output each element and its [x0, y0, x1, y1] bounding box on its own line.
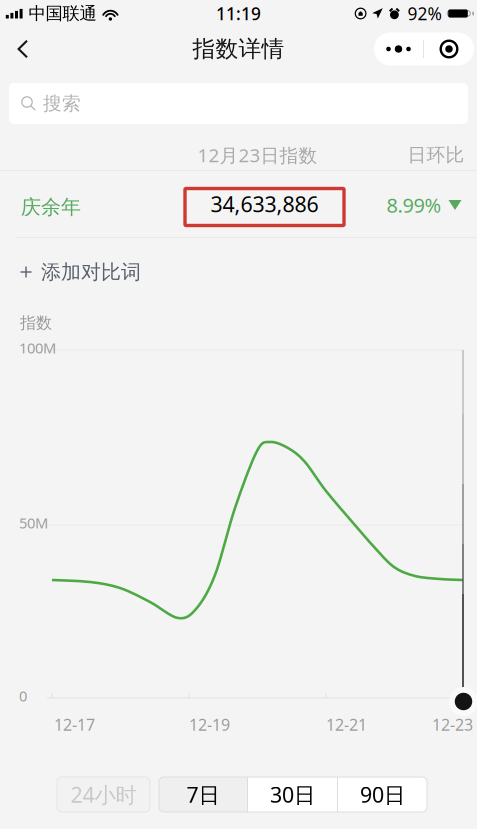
- staticText: 90日: [360, 780, 405, 809]
- button[interactable]: 24小时: [57, 777, 150, 812]
- button[interactable]: More options: [374, 32, 423, 65]
- staticText: 100M: [19, 338, 56, 357]
- button[interactable]: 庆余年: [0, 170, 477, 238]
- button[interactable]: Back: [0, 27, 46, 71]
- button[interactable]: 30日: [248, 777, 337, 812]
- staticText: 50M: [19, 513, 48, 532]
- staticText: 庆余年: [21, 195, 81, 219]
- staticText: 指数: [20, 313, 52, 333]
- staticText: 11:19: [216, 2, 261, 25]
- staticText: 12-17: [54, 714, 95, 735]
- staticText: 30日: [270, 780, 315, 809]
- button[interactable]: 搜索: [9, 83, 468, 124]
- staticText: 中国联通: [28, 3, 96, 24]
- staticText: 12-21: [326, 714, 367, 735]
- staticText: 添加对比词: [41, 260, 141, 284]
- staticText: 8.99%: [386, 192, 441, 218]
- staticText: 34,633,886: [210, 190, 318, 218]
- staticText: 0: [19, 686, 27, 705]
- staticText: 12-23: [432, 714, 473, 735]
- staticText: 日环比: [407, 143, 464, 166]
- staticText: 24小时: [70, 780, 136, 809]
- staticText: 92%: [408, 2, 442, 25]
- button[interactable]: 90日: [338, 777, 427, 812]
- button[interactable]: Close mini program: [424, 32, 474, 65]
- button[interactable]: 7日: [159, 777, 247, 812]
- staticText: 搜索: [43, 92, 81, 115]
- staticText: 12月23日指数: [197, 143, 317, 167]
- staticText: 指数详情: [192, 35, 284, 63]
- staticText: 7日: [186, 780, 219, 809]
- staticText: 12-19: [189, 714, 230, 735]
- button[interactable]: 添加对比词: [0, 238, 477, 294]
